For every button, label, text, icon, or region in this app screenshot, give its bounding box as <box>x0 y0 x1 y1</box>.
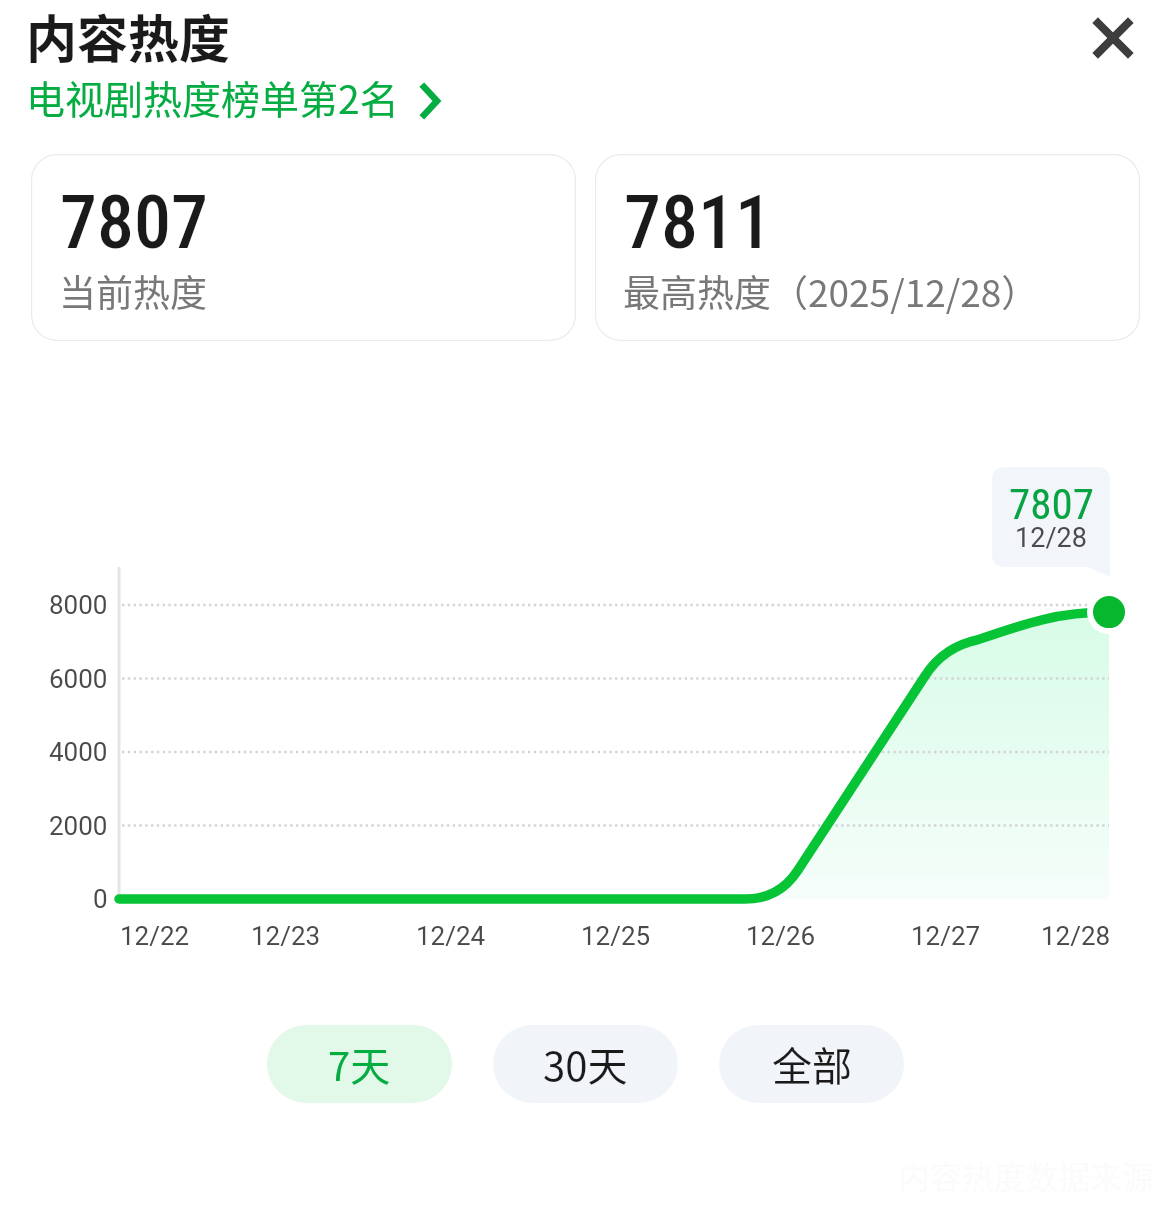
staticText: 全部 <box>772 1035 852 1093</box>
staticText: 12/25 <box>581 921 651 951</box>
staticText: 最高热度（2025/12/28） <box>623 264 1039 318</box>
button[interactable]: 电视剧热度榜单第2名 <box>26 69 441 125</box>
staticText: 当前热度 <box>59 264 207 318</box>
staticText: 内容热度 <box>26 0 231 73</box>
staticText: 7811 <box>624 179 772 266</box>
staticText: 0 <box>93 884 108 914</box>
staticText: 7807 <box>1009 479 1094 529</box>
staticText: 8000 <box>49 590 108 620</box>
staticText: 12/28 <box>1041 921 1111 951</box>
staticText: 12/27 <box>911 921 981 951</box>
staticText: 12/28 <box>1015 522 1087 554</box>
button[interactable]: 全部 <box>719 1025 904 1103</box>
button[interactable]: Close <box>1068 0 1158 83</box>
staticText: 6000 <box>49 664 108 694</box>
staticText: 7807 <box>60 179 208 266</box>
staticText: 30天 <box>543 1035 628 1093</box>
button[interactable]: 7天 <box>267 1025 452 1103</box>
button[interactable]: 7811 <box>595 154 1140 341</box>
button[interactable]: 7807 <box>31 154 576 341</box>
button[interactable]: 30天 <box>493 1025 678 1103</box>
staticText: 12/24 <box>416 921 486 951</box>
staticText: 12/22 <box>120 921 190 951</box>
staticText: 2000 <box>49 811 108 841</box>
staticText: 12/26 <box>746 921 816 951</box>
staticText: 7天 <box>328 1035 391 1093</box>
staticText: 12/23 <box>251 921 321 951</box>
staticText: 4000 <box>49 737 108 767</box>
staticText: 电视剧热度榜单第2名 <box>26 69 399 125</box>
